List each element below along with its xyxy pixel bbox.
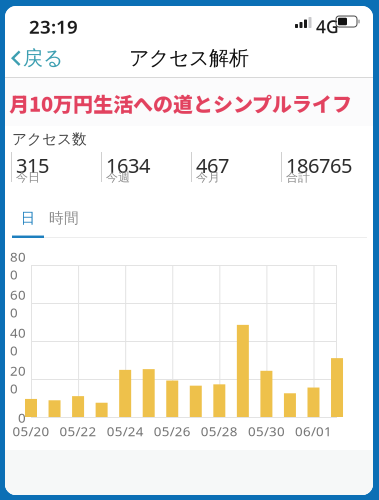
staticText: 月10万円生活への道とシンプルライフ [9, 88, 352, 117]
staticText: アクセス数 [12, 130, 87, 148]
staticText: 日 [20, 209, 35, 227]
staticText: 今日 [16, 170, 40, 185]
staticText: 今週 [106, 170, 130, 185]
staticText: 800 [10, 248, 26, 283]
staticText: 今月 [196, 170, 220, 185]
staticText: 時間 [49, 209, 79, 227]
staticText: 23:19 [29, 14, 78, 39]
staticText: 467 [196, 152, 229, 179]
button[interactable]: 日 [12, 206, 44, 230]
staticText: 戻る [23, 46, 63, 70]
staticText: 05/22 [60, 422, 97, 440]
staticText: 合計 [286, 170, 310, 185]
staticText: 06/01 [295, 422, 332, 440]
staticText: 4G [316, 15, 339, 38]
staticText: 05/20 [12, 422, 49, 440]
button[interactable]: 時間 [44, 206, 84, 230]
staticText: 1634 [106, 152, 150, 179]
staticText: 05/28 [201, 422, 238, 440]
staticText: 400 [10, 324, 26, 359]
staticText: 0 [18, 409, 26, 426]
staticText: 600 [10, 286, 26, 321]
staticText: 200 [10, 362, 26, 397]
staticText: 186765 [286, 152, 352, 179]
staticText: 05/24 [107, 422, 144, 440]
button[interactable]: 戻る [5, 39, 71, 77]
staticText: 05/30 [248, 422, 285, 440]
staticText: 315 [16, 152, 49, 179]
staticText: アクセス解析 [129, 46, 249, 70]
staticText: 05/26 [154, 422, 191, 440]
